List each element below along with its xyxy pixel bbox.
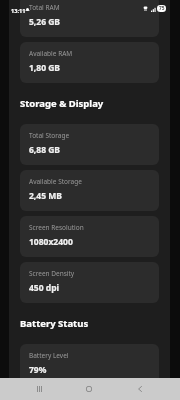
staticText: Total Storage [29, 131, 70, 140]
button[interactable]: Available Storage [20, 170, 159, 211]
staticText: 450 dpi [29, 282, 60, 294]
button[interactable]: Screen Resolution [20, 216, 159, 257]
staticText: 79% [29, 364, 47, 376]
staticText: Battery Level [29, 351, 69, 360]
staticText: Screen Resolution [29, 223, 84, 232]
staticText: 75 [159, 5, 165, 12]
button[interactable]: Recent apps [14, 378, 64, 400]
staticText: Storage & Display [20, 97, 104, 110]
staticText: Available Storage [29, 177, 82, 186]
button[interactable]: Total Storage [20, 124, 159, 165]
staticText: Available RAM [29, 49, 73, 58]
staticText: 2,45 MB [29, 190, 62, 202]
staticText: 5,26 GB [29, 16, 61, 28]
button[interactable]: Total RAM [20, 0, 159, 37]
staticText: 13:11 [11, 7, 26, 15]
staticText: 6,88 GB [29, 144, 61, 156]
button[interactable]: Battery Level [20, 344, 159, 385]
button[interactable]: Home [64, 378, 114, 400]
button[interactable]: Back [115, 378, 165, 400]
staticText: Total RAM [29, 3, 60, 12]
staticText: 1,80 GB [29, 62, 61, 74]
staticText: Battery Status [20, 317, 89, 330]
button[interactable]: Available RAM [20, 42, 159, 83]
button[interactable]: Screen Density [20, 262, 159, 303]
staticText: 1080x2400 [29, 236, 73, 248]
staticText: Screen Density [29, 269, 75, 278]
